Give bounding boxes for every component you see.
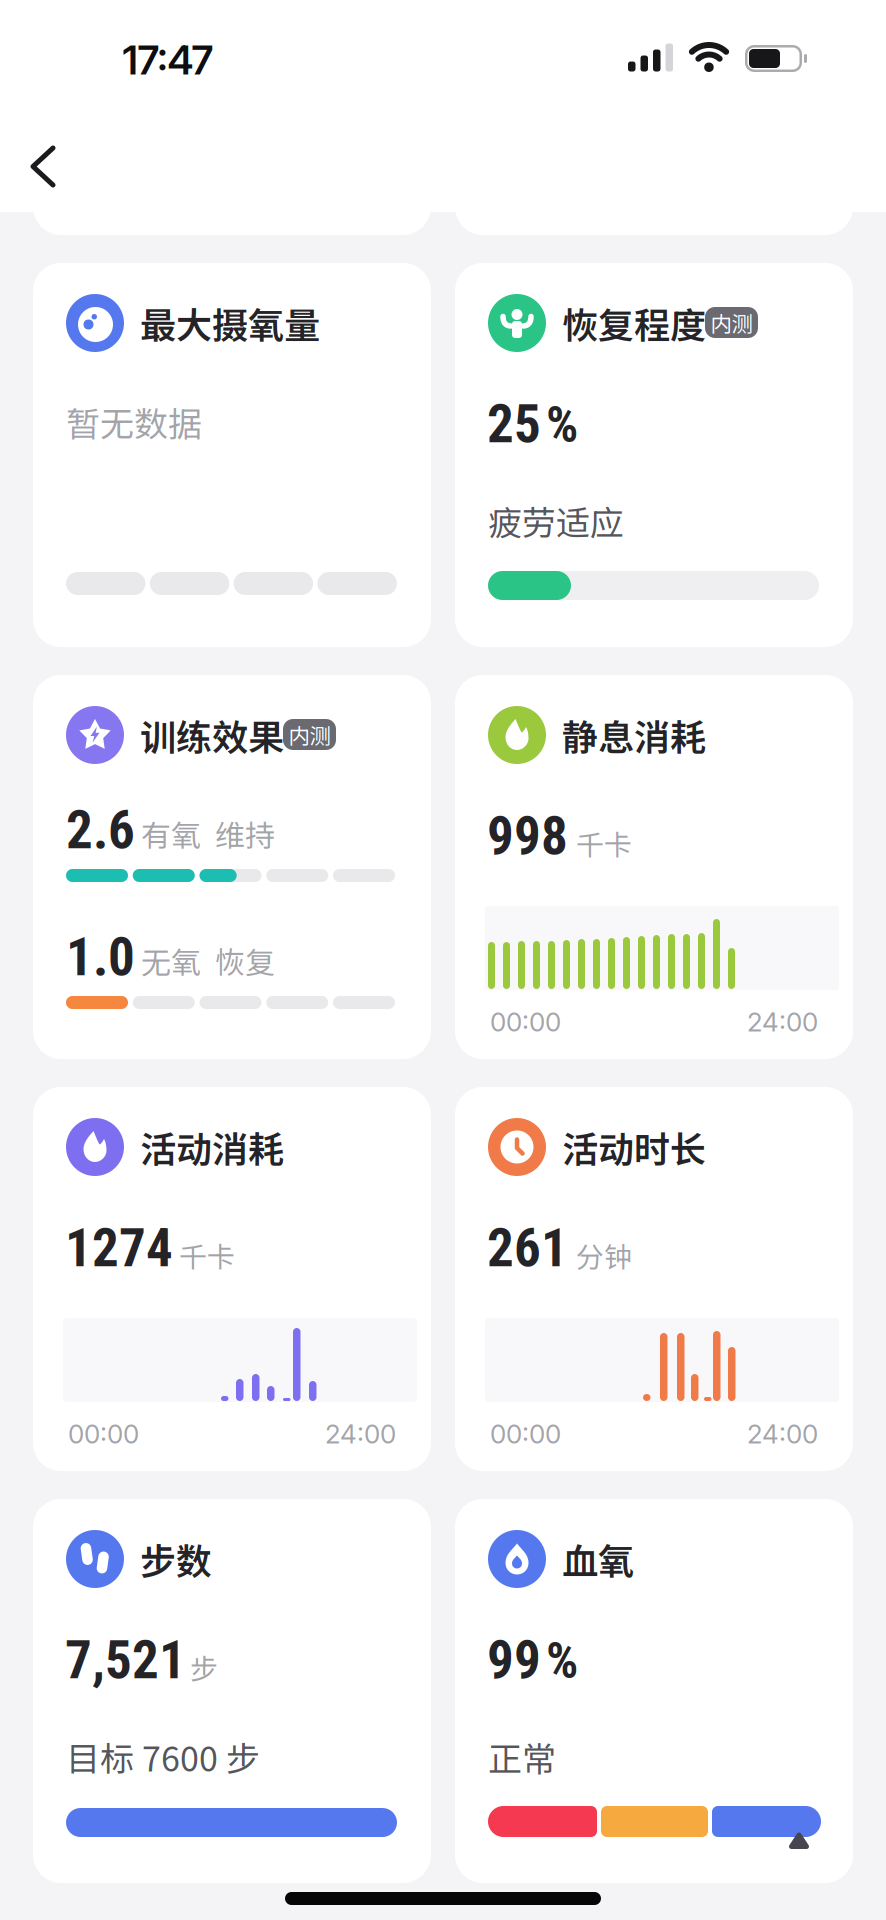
staticText: %	[546, 395, 578, 454]
staticText: 恢复程度	[562, 297, 706, 349]
staticText: 1.0	[66, 926, 135, 988]
staticText: 步	[190, 1647, 218, 1687]
staticText: 99	[487, 1629, 541, 1691]
button[interactable]: 训练效果	[33, 675, 431, 1059]
staticText: 活动时长	[562, 1121, 706, 1173]
button[interactable]: 步数	[33, 1499, 431, 1883]
button[interactable]: Back	[0, 136, 70, 196]
staticText: 训练效果	[140, 709, 284, 761]
staticText: 17:47	[122, 36, 213, 84]
staticText: 00:00	[68, 1418, 139, 1450]
staticText: 疲劳适应	[488, 496, 624, 545]
staticText: 最大摄氧量	[140, 297, 320, 349]
staticText: 内测	[710, 307, 752, 338]
staticText: 血氧	[562, 1533, 634, 1585]
staticText: 分钟	[576, 1235, 632, 1275]
staticText: 7,521	[65, 1629, 186, 1691]
button[interactable]: 血氧	[455, 1499, 853, 1883]
staticText: 24:00	[747, 1006, 818, 1038]
staticText: 正常	[488, 1732, 556, 1781]
staticText: 活动消耗	[140, 1121, 284, 1173]
staticText: 暂无数据	[66, 397, 202, 446]
staticText: 恢复	[215, 939, 275, 982]
staticText: 25	[487, 393, 541, 455]
staticText: 目标 7600 步	[66, 1732, 260, 1781]
button[interactable]: 活动时长	[455, 1087, 853, 1471]
staticText: 步数	[140, 1533, 212, 1585]
button[interactable]: 活动消耗	[33, 1087, 431, 1471]
staticText: 261	[487, 1217, 568, 1279]
staticText: 00:00	[490, 1418, 561, 1450]
button[interactable]: 恢复程度	[455, 263, 853, 647]
staticText: 千卡	[576, 823, 632, 863]
staticText: 00:00	[490, 1006, 561, 1038]
staticText: 无氧	[141, 939, 201, 982]
staticText: 静息消耗	[562, 709, 706, 761]
staticText: 998	[487, 805, 568, 867]
button[interactable]: 静息消耗	[455, 675, 853, 1059]
staticText: 2.6	[66, 799, 135, 861]
staticText: 1274	[65, 1217, 173, 1279]
staticText: 有氧	[141, 812, 201, 855]
staticText: 24:00	[747, 1418, 818, 1450]
staticText: 千卡	[179, 1235, 235, 1275]
staticText: 24:00	[325, 1418, 396, 1450]
staticText: 维持	[215, 812, 275, 855]
button[interactable]: 最大摄氧量	[33, 263, 431, 647]
staticText: 内测	[288, 719, 330, 750]
staticText: %	[546, 1631, 578, 1690]
